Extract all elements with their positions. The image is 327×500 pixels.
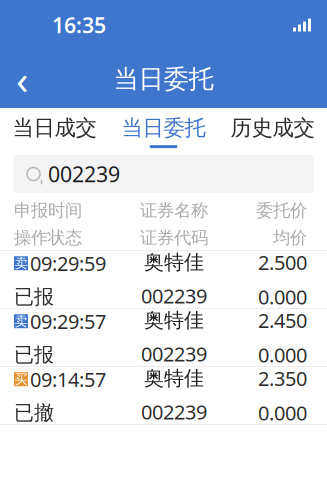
- staticText: 卖: [14, 255, 27, 271]
- staticText: 当日委托: [121, 115, 205, 141]
- button[interactable]: 当日成交: [0, 108, 109, 148]
- button[interactable]: 历史成交: [218, 108, 327, 148]
- staticText: 已报: [14, 342, 54, 367]
- staticText: 002239: [141, 282, 207, 309]
- staticText: 2.350: [258, 365, 307, 391]
- staticText: 002239: [48, 160, 120, 188]
- button[interactable]: 返回: [0, 57, 44, 101]
- button[interactable]: 当日委托: [109, 108, 218, 148]
- staticText: 09:29:57: [30, 308, 106, 334]
- staticText: 当日委托: [113, 63, 213, 94]
- staticText: 奥特佳: [144, 308, 204, 332]
- button[interactable]: 002239: [13, 155, 314, 193]
- staticText: 0.000: [258, 283, 307, 310]
- staticText: 证券代码: [140, 227, 208, 248]
- staticText: 2.500: [258, 249, 307, 275]
- staticText: 证券名称: [140, 200, 208, 221]
- staticText: ‹: [16, 52, 28, 105]
- staticText: 已报: [14, 284, 54, 309]
- staticText: 操作状态: [14, 227, 82, 248]
- staticText: 0.000: [258, 399, 307, 426]
- staticText: 委托价: [256, 200, 307, 221]
- staticText: 均价: [273, 227, 307, 248]
- staticText: 16:35: [52, 11, 106, 39]
- staticText: 历史成交: [230, 115, 314, 141]
- button[interactable]: 买: [0, 367, 327, 424]
- staticText: 09:14:57: [30, 366, 106, 392]
- staticText: 002239: [141, 340, 207, 367]
- button[interactable]: 卖: [0, 251, 327, 308]
- staticText: 2.450: [258, 307, 307, 333]
- staticText: 当日成交: [12, 115, 96, 141]
- staticText: 0.000: [258, 341, 307, 368]
- staticText: 奥特佳: [144, 366, 204, 390]
- staticText: 买: [14, 371, 27, 387]
- staticText: 已撤: [14, 400, 54, 425]
- staticText: 09:29:59: [30, 250, 106, 276]
- staticText: 卖: [14, 313, 27, 329]
- staticText: 002239: [141, 398, 207, 425]
- button[interactable]: 卖: [0, 309, 327, 366]
- staticText: 申报时间: [14, 200, 82, 221]
- staticText: 奥特佳: [144, 250, 204, 274]
